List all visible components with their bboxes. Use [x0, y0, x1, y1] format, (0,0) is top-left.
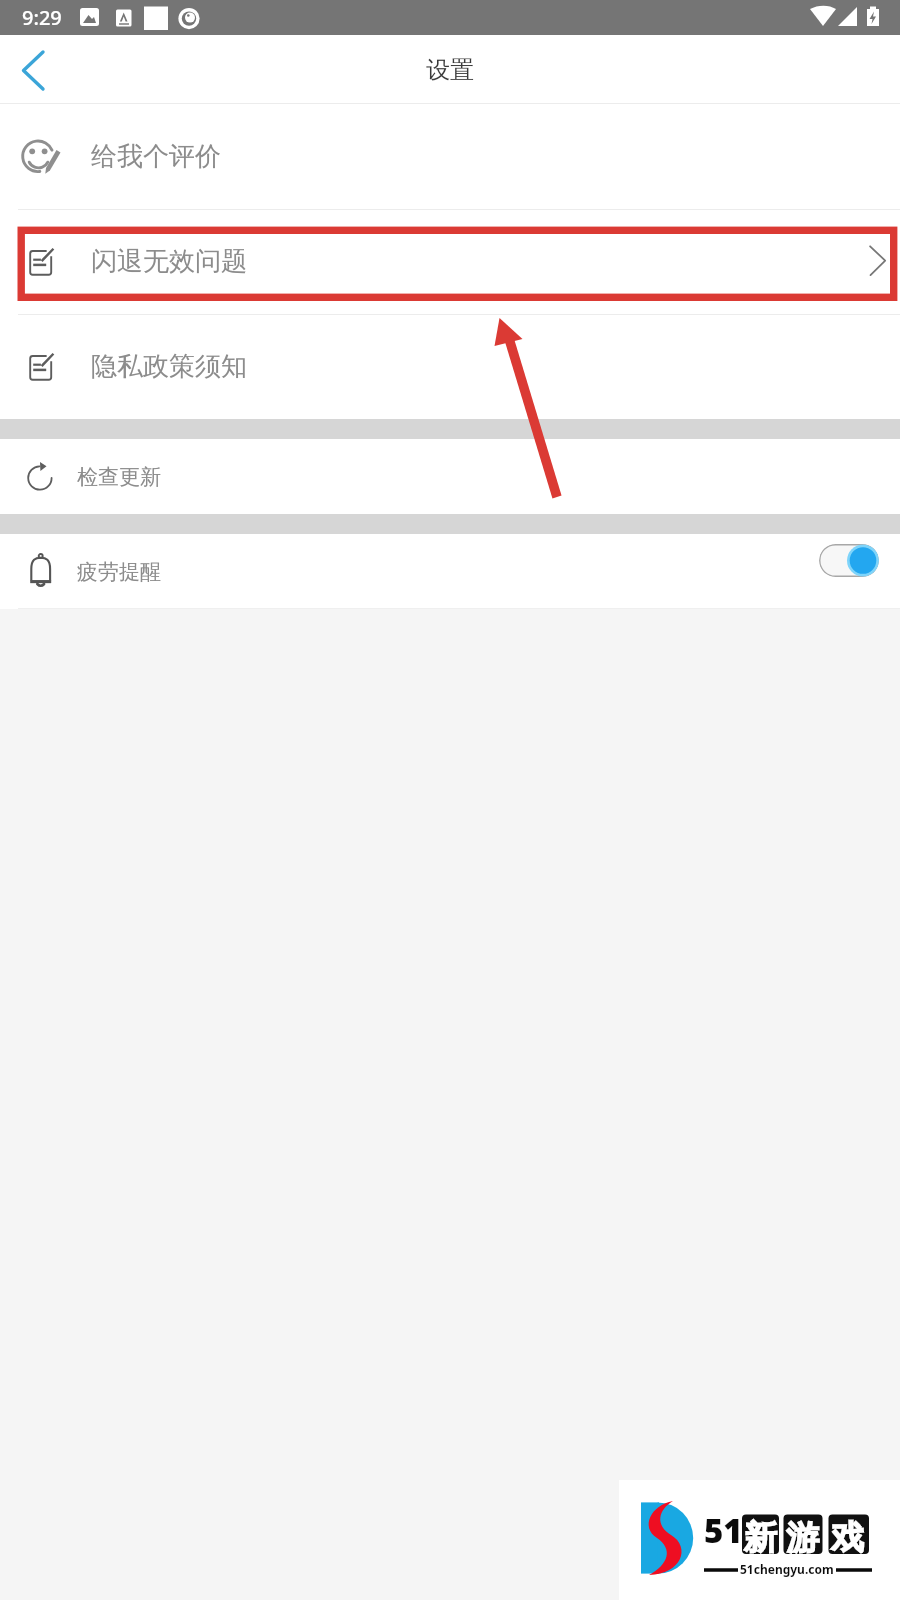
staticText: 游 [786, 1517, 819, 1559]
staticText: 51 [704, 1508, 743, 1553]
button[interactable]: 闪退无效问题 [0, 209, 900, 314]
button[interactable]: 疲劳提醒 [0, 534, 900, 609]
staticText: 9:29 [22, 4, 62, 31]
staticText: 闪退无效问题 [91, 245, 247, 278]
staticText: 戏 [831, 1517, 864, 1559]
button[interactable]: 给我个评价 [0, 104, 900, 209]
button[interactable]: Fatigue reminder toggle [819, 544, 879, 577]
button[interactable]: 隐私政策须知 [0, 314, 900, 419]
staticText: 给我个评价 [91, 140, 221, 173]
staticText: 疲劳提醒 [77, 559, 161, 585]
staticText: 检查更新 [77, 464, 161, 490]
button[interactable]: 检查更新 [0, 439, 900, 514]
staticText: 设置 [426, 55, 474, 85]
staticText: 新 [744, 1517, 777, 1559]
staticText: 隐私政策须知 [91, 350, 247, 383]
staticText: 51chengyu.com [740, 1561, 834, 1577]
button[interactable]: Back [0, 36, 68, 104]
